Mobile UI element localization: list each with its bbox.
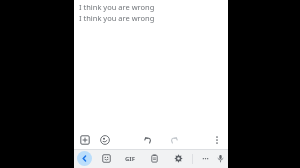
button[interactable]: Voice input bbox=[213, 151, 228, 166]
button[interactable]: Stickers bbox=[97, 132, 113, 148]
button[interactable]: Collapse keyboard bbox=[77, 151, 92, 166]
button[interactable]: Clipboard bbox=[147, 151, 162, 166]
staticText: I think you are wrong bbox=[79, 2, 155, 12]
button[interactable]: More bbox=[198, 151, 213, 166]
staticText: I think you are wrong bbox=[79, 13, 155, 23]
button[interactable]: Emoji sticker bbox=[99, 151, 114, 166]
button[interactable]: Redo bbox=[166, 132, 182, 148]
button[interactable]: GIF bbox=[122, 151, 138, 166]
button[interactable]: More options bbox=[209, 132, 225, 148]
staticText: GIF bbox=[125, 155, 135, 163]
button[interactable]: Settings bbox=[171, 151, 186, 166]
button[interactable]: Insert bbox=[77, 132, 93, 148]
button[interactable]: Undo bbox=[140, 132, 156, 148]
